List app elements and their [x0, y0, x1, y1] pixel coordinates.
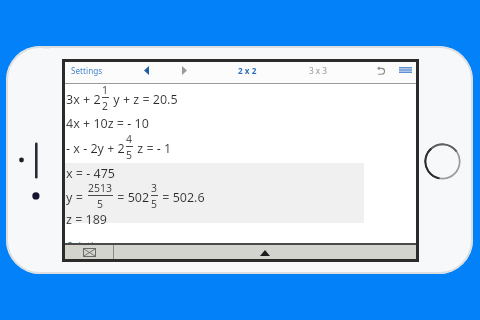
- staticText: Solution: [67, 239, 106, 244]
- staticText: 3x + 2: [66, 91, 101, 108]
- button[interactable]: 3 x 3: [307, 63, 329, 78]
- staticText: y + z = 20.5: [110, 91, 178, 108]
- button[interactable]: Settings: [69, 63, 105, 78]
- staticText: 4x + 10z = - 10: [66, 115, 149, 132]
- staticText: 1: [102, 83, 109, 97]
- button[interactable]: 2 x 2: [236, 63, 259, 78]
- staticText: z = 189: [66, 211, 107, 228]
- staticText: 3 x 3: [309, 65, 327, 76]
- button[interactable]: Hide keyboard: [114, 245, 416, 259]
- staticText: x = - 475: [66, 165, 115, 182]
- staticText: 2: [102, 99, 109, 113]
- staticText: 4: [126, 132, 133, 146]
- staticText: 5: [97, 197, 104, 211]
- button[interactable]: Home: [424, 143, 461, 180]
- button[interactable]: Menu: [396, 61, 414, 79]
- staticText: Settings: [71, 65, 103, 76]
- staticText: = 502.6: [159, 189, 205, 206]
- button[interactable]: Previous: [137, 61, 155, 79]
- staticText: 2513: [88, 181, 113, 195]
- staticText: 5: [126, 148, 133, 162]
- staticText: 2 x 2: [238, 65, 257, 76]
- button[interactable]: Undo: [371, 61, 389, 79]
- staticText: - x - 2y + 2: [66, 140, 125, 157]
- staticText: y =: [66, 189, 87, 206]
- staticText: z = - 1: [134, 140, 172, 157]
- staticText: = 502: [114, 189, 150, 206]
- staticText: 5: [151, 197, 158, 211]
- staticText: 3: [151, 181, 158, 195]
- button[interactable]: Mail: [65, 245, 113, 259]
- button[interactable]: Next: [175, 61, 193, 79]
